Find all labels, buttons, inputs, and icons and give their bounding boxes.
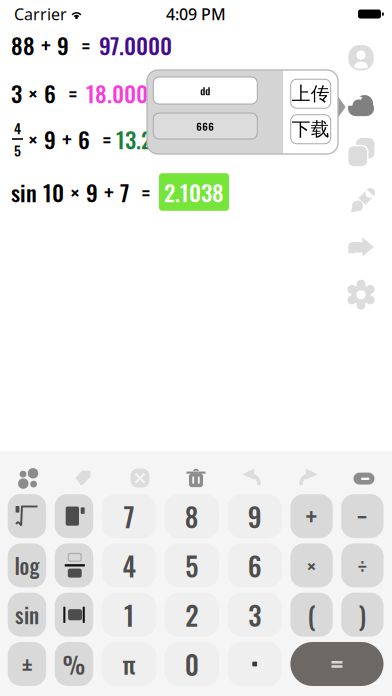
staticText: 2 [185, 595, 198, 634]
staticText: 6 [248, 546, 262, 585]
staticText: dd [200, 83, 210, 98]
staticText: 666 [196, 118, 214, 134]
button[interactable]: 6 [227, 543, 282, 587]
staticText: ) [359, 596, 366, 633]
button[interactable]: Share [342, 224, 380, 271]
button[interactable]: Backspace [336, 465, 392, 491]
button[interactable]: dd [153, 77, 257, 104]
button[interactable]: × [290, 543, 333, 587]
button[interactable]: ( [290, 593, 333, 637]
staticText: 13.2000 [116, 122, 188, 156]
button[interactable]: 7 [102, 494, 156, 538]
button[interactable]: 1 [102, 593, 156, 637]
staticText: × 9 + 6 = [28, 122, 112, 156]
button[interactable]: Theme [342, 176, 380, 224]
button[interactable]: 下载 [291, 115, 331, 144]
button[interactable]: Absolute value [55, 593, 93, 637]
staticText: ÷ [358, 549, 367, 582]
button[interactable]: Undo [224, 465, 280, 491]
button[interactable]: + [290, 494, 333, 538]
button[interactable]: − [341, 494, 383, 538]
staticText: 9 [248, 496, 262, 536]
button[interactable]: 666 [153, 113, 257, 139]
button[interactable]: 4 [102, 543, 156, 587]
staticText: 88 + 9 = [11, 28, 91, 62]
button[interactable]: Equals [290, 642, 383, 686]
staticText: 5 [14, 140, 21, 160]
button[interactable]: Square root [8, 494, 46, 538]
button[interactable]: ± [8, 642, 46, 686]
staticText: 5 [185, 546, 198, 585]
staticText: 18.0000 [86, 76, 160, 110]
button[interactable]: Power [55, 494, 93, 538]
staticText: 3 [248, 595, 261, 634]
button[interactable]: Fraction [55, 543, 93, 587]
staticText: 4 [14, 117, 21, 138]
button[interactable]: 3 [227, 593, 282, 637]
button[interactable]: 0 [165, 642, 219, 686]
staticText: 7 [123, 496, 134, 536]
button[interactable]: Apps [0, 465, 56, 491]
button[interactable]: 9 [227, 494, 282, 538]
button[interactable]: Documents [342, 129, 380, 176]
button[interactable]: sin [8, 593, 46, 637]
staticText: 3 × 6 = [11, 76, 78, 110]
button[interactable]: ÷ [341, 543, 383, 587]
button[interactable]: Delete [168, 465, 224, 491]
staticText: 2.1038 [164, 175, 224, 209]
button[interactable]: % [55, 642, 93, 686]
button[interactable]: 上传 [291, 79, 331, 108]
staticText: sin [15, 599, 39, 630]
staticText: 上传 [292, 82, 330, 105]
staticText: + [305, 496, 317, 536]
button[interactable]: log [8, 543, 46, 587]
button[interactable]: Redo [280, 465, 336, 491]
staticText: 4 [122, 546, 135, 585]
staticText: log [14, 550, 39, 581]
staticText: 4:09 PM [166, 3, 226, 25]
button[interactable]: ) [341, 593, 383, 637]
button[interactable]: 8 [165, 494, 219, 538]
staticText: sin 10 × 9 + 7 = [11, 175, 151, 209]
staticText: ( [307, 596, 315, 633]
staticText: 97.0000 [99, 28, 172, 62]
button[interactable]: Account [342, 34, 380, 81]
button[interactable]: 2 [165, 593, 219, 637]
button[interactable]: Clear [112, 465, 168, 491]
staticText: 0 [185, 644, 199, 684]
staticText: 1 [124, 595, 134, 634]
staticText: π [122, 646, 135, 682]
staticText: % [62, 646, 85, 682]
button[interactable]: π [102, 642, 156, 686]
staticText: Carrier [14, 3, 67, 25]
button[interactable]: Settings [342, 271, 380, 318]
button[interactable]: Cloud [342, 81, 380, 129]
staticText: 8 [185, 496, 199, 536]
button[interactable]: Tag [56, 465, 112, 491]
staticText: 下载 [292, 117, 330, 141]
staticText: ± [22, 646, 32, 682]
staticText: × [306, 549, 316, 582]
button[interactable]: Decimal point [227, 642, 282, 686]
staticText: − [356, 496, 368, 536]
button[interactable]: 5 [165, 543, 219, 587]
